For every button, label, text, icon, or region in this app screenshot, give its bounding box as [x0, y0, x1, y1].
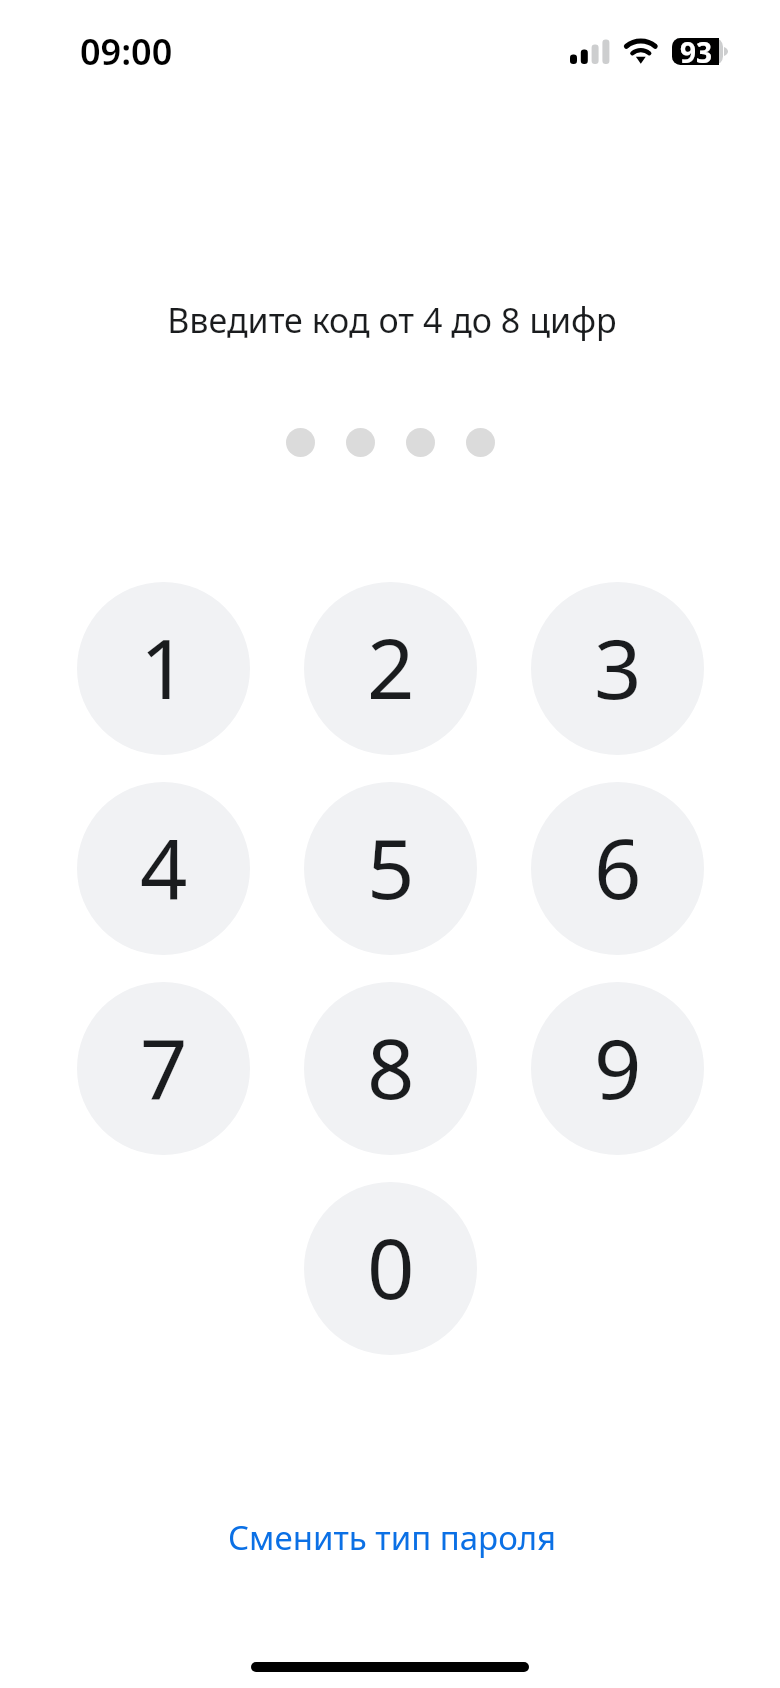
staticText: 7: [140, 1010, 188, 1123]
button[interactable]: 6: [531, 782, 704, 955]
button[interactable]: 5: [304, 782, 477, 955]
button[interactable]: 4: [77, 782, 250, 955]
staticText: 2: [367, 610, 415, 723]
staticText: Введите код от 4 до 8 цифр: [2, 297, 780, 343]
staticText: 09:00: [80, 27, 173, 76]
staticText: 6: [594, 810, 642, 923]
staticText: 0: [367, 1210, 415, 1323]
staticText: Сменить тип пароля: [228, 1515, 557, 1560]
other: Battery 93 percent: [672, 38, 723, 65]
staticText: 1: [140, 610, 188, 723]
button[interactable]: 2: [304, 582, 477, 755]
button[interactable]: 1: [77, 582, 250, 755]
button[interactable]: 3: [531, 582, 704, 755]
button[interactable]: 7: [77, 982, 250, 1155]
button[interactable]: 9: [531, 982, 704, 1155]
staticText: 5: [367, 810, 415, 923]
other: Cellular signal: [570, 38, 610, 65]
button[interactable]: Сменить тип пароля: [210, 1507, 575, 1568]
staticText: 93: [680, 33, 713, 71]
button[interactable]: 0: [304, 1182, 477, 1355]
staticText: 4: [140, 810, 188, 923]
button[interactable]: 8: [304, 982, 477, 1155]
other: Wi-Fi: [619, 36, 663, 64]
staticText: 8: [367, 1010, 415, 1123]
staticText: 9: [594, 1010, 642, 1123]
staticText: 3: [594, 610, 642, 723]
